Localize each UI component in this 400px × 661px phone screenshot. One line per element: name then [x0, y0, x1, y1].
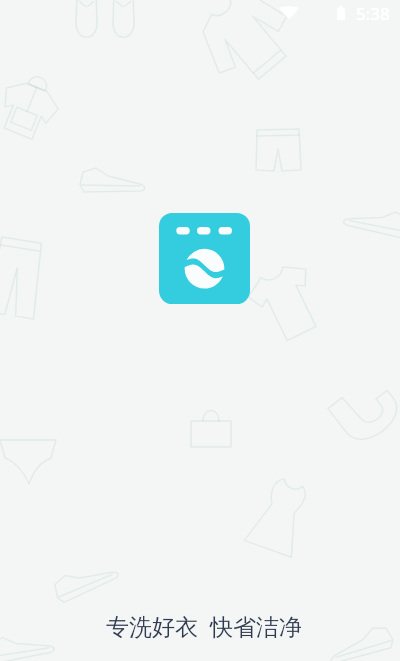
staticText: 专洗好衣 快省洁净 — [4, 610, 400, 641]
staticText: 5:38 — [356, 2, 390, 25]
other: Laundry app logo — [159, 213, 250, 304]
